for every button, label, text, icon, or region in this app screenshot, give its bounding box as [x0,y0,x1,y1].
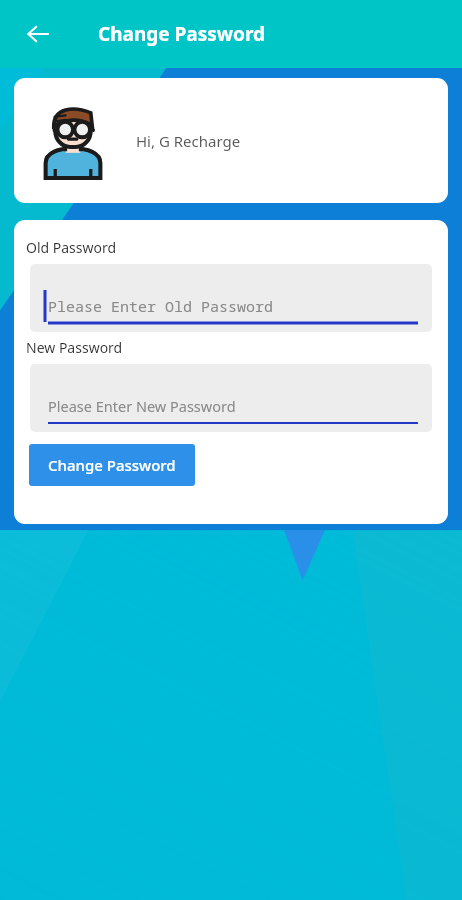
staticText: Hi, G Recharge [136,131,241,151]
staticText: Old Password [26,238,117,257]
staticText: Change Password [48,455,176,475]
button[interactable]: Back [16,12,60,56]
button[interactable]: Please Enter New Password [30,364,432,432]
staticText: Change Password [98,21,266,47]
button[interactable]: Change Password [29,444,195,486]
staticText: New Password [26,338,123,357]
button[interactable]: Hi, G Recharge [14,78,448,203]
button[interactable]: Please Enter Old Password [30,264,432,332]
staticText: Please Enter New Password [48,396,236,416]
staticText: Please Enter Old Password [48,296,274,316]
